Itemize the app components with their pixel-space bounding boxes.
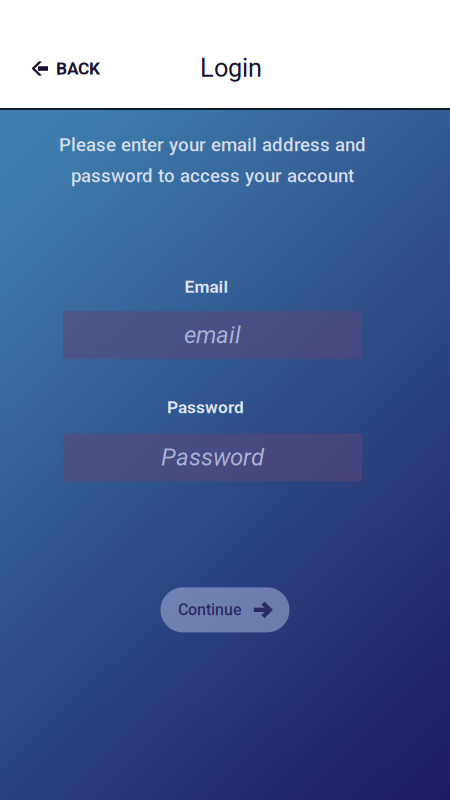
staticText: Continue (178, 600, 242, 619)
staticText: email (184, 321, 241, 349)
button[interactable]: BACK (0, 44, 118, 92)
button[interactable]: Continue (160, 587, 289, 632)
staticText: Password (161, 443, 264, 471)
staticText: Password (167, 397, 244, 417)
staticText: Email (184, 277, 228, 297)
staticText: BACK (56, 58, 100, 79)
staticText: password to access your account (71, 165, 354, 187)
staticText: Login (200, 53, 262, 83)
staticText: Please enter your email address and (59, 134, 366, 156)
